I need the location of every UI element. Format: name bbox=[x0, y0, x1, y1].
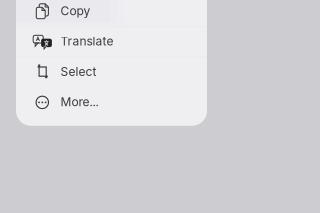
button[interactable]: More... bbox=[16, 87, 207, 117]
staticText: Translate bbox=[60, 34, 113, 48]
button[interactable]: Copy bbox=[16, 0, 207, 26]
button[interactable]: Translate bbox=[16, 26, 207, 56]
staticText: More... bbox=[60, 95, 98, 109]
button[interactable]: Select bbox=[16, 56, 207, 87]
staticText: Copy bbox=[60, 3, 90, 18]
staticText: Select bbox=[60, 64, 96, 79]
